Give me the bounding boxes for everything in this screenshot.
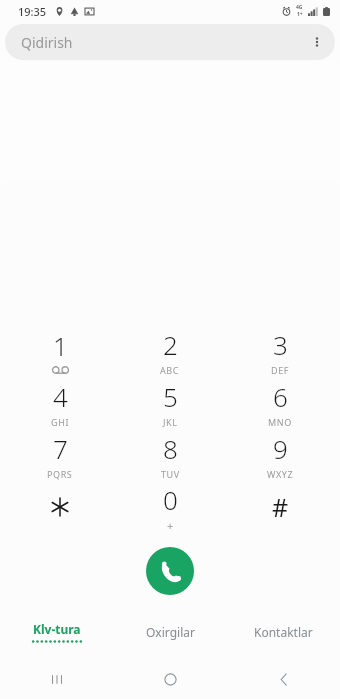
staticText: # <box>272 490 289 524</box>
staticText: TUV <box>161 468 180 480</box>
button[interactable]: 2 <box>120 325 220 377</box>
staticText: 6 <box>273 379 288 414</box>
staticText: 4 <box>53 379 68 414</box>
button[interactable]: Recents <box>0 659 114 699</box>
staticText: 3 <box>273 327 288 362</box>
staticText: 5 <box>163 379 178 414</box>
button[interactable] <box>10 481 110 533</box>
button[interactable]: 8 <box>120 429 220 481</box>
staticText: DEF <box>271 364 290 376</box>
staticText: 8 <box>163 431 178 466</box>
button[interactable]: # <box>230 481 330 533</box>
staticText: PQRS <box>47 468 73 480</box>
staticText: ABC <box>160 364 180 376</box>
staticText: MNO <box>268 416 292 428</box>
button[interactable]: Qidirish <box>5 24 335 60</box>
staticText: + <box>167 518 174 533</box>
button[interactable]: 0 <box>120 481 220 533</box>
button[interactable]: Call <box>146 547 194 595</box>
button[interactable]: 3 <box>230 325 330 377</box>
staticText: 2 <box>163 327 178 362</box>
button[interactable]: Oxirgilar <box>114 615 227 649</box>
staticText: JKL <box>163 416 178 428</box>
staticText: 1+ <box>297 11 303 18</box>
staticText: Klv-tura <box>33 621 81 637</box>
button[interactable]: 1 <box>10 325 110 377</box>
staticText: 7 <box>53 431 68 466</box>
staticText: Oxirgilar <box>146 624 195 640</box>
staticText: WXYZ <box>267 468 294 480</box>
staticText: Qidirish <box>21 33 73 52</box>
button[interactable]: 6 <box>230 377 330 429</box>
button[interactable]: Klv-tura <box>0 615 114 649</box>
button[interactable]: 7 <box>10 429 110 481</box>
staticText: GHI <box>51 416 70 428</box>
button[interactable]: 4 <box>10 377 110 429</box>
button[interactable]: Home <box>114 659 227 699</box>
button[interactable]: Kontaktlar <box>227 615 340 649</box>
staticText: 19:35 <box>18 4 47 19</box>
button[interactable]: Back <box>227 659 340 699</box>
button[interactable]: 9 <box>230 429 330 481</box>
button[interactable]: More options <box>299 24 335 60</box>
staticText: 4G <box>296 4 303 11</box>
button[interactable]: 5 <box>120 377 220 429</box>
staticText: 1 <box>53 328 68 363</box>
staticText: Kontaktlar <box>254 624 313 640</box>
staticText: 9 <box>273 431 288 466</box>
staticText: 0 <box>163 482 178 517</box>
